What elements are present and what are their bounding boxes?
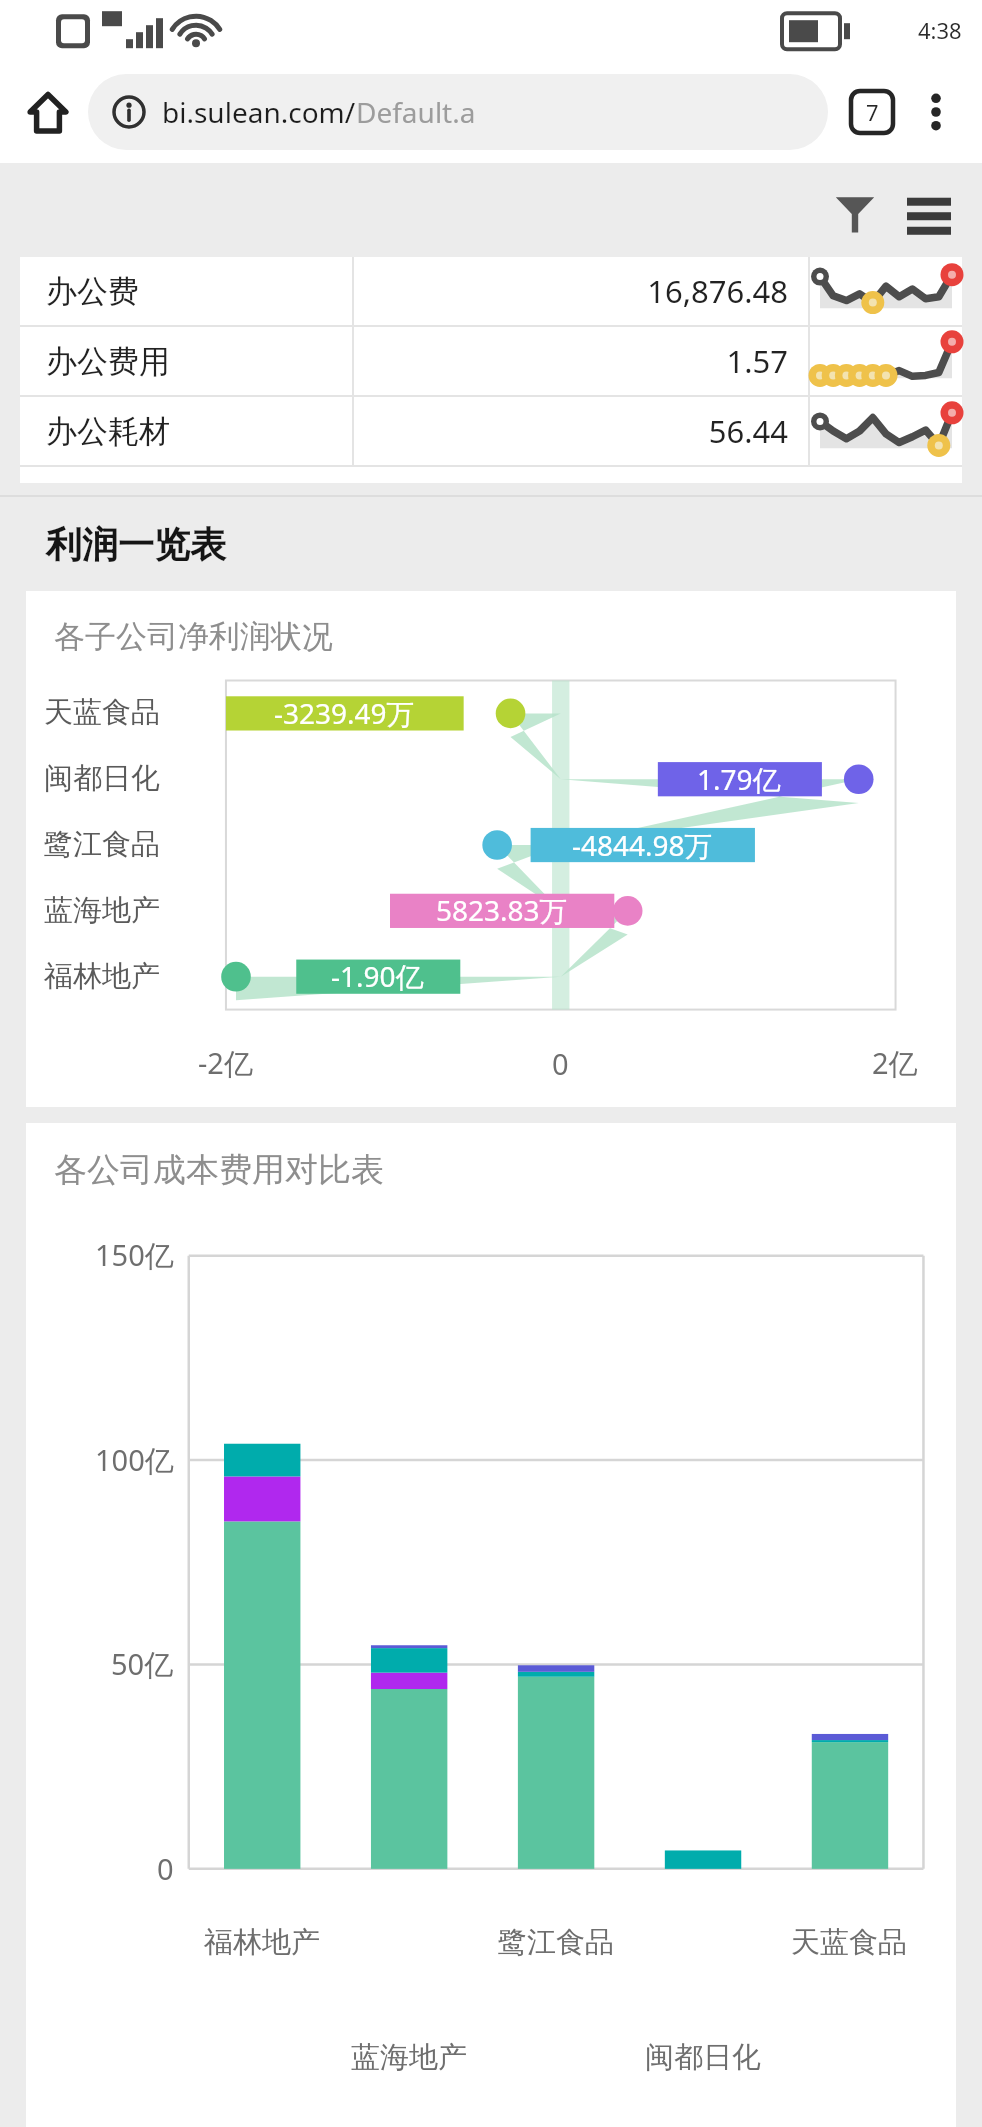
staticText: 2亿	[872, 1043, 918, 1083]
staticText: 50亿	[111, 1644, 174, 1684]
staticText: 鹭江食品	[44, 826, 160, 863]
staticText: 56.44	[354, 410, 788, 452]
button[interactable]: Menu	[900, 185, 958, 243]
staticText: bi.sulean.com/	[162, 93, 356, 131]
staticText: 各公司成本费用对比表	[54, 1149, 384, 1191]
staticText: 福林地产	[44, 958, 160, 995]
button[interactable]: bi.sulean.com/	[88, 74, 828, 150]
staticText: Default.a	[356, 93, 476, 131]
staticText: -1.90亿	[331, 957, 424, 995]
staticText: -4844.98万	[572, 826, 713, 864]
staticText: 闽都日化	[44, 760, 160, 797]
button[interactable]: Filter	[826, 185, 884, 243]
staticText: 100亿	[95, 1440, 174, 1480]
staticText: 天蓝食品	[44, 694, 160, 731]
button[interactable]: 办公耗材	[20, 397, 962, 465]
staticText: 利润一览表	[46, 522, 226, 567]
staticText: 1.57	[354, 340, 788, 382]
staticText: 闽都日化	[645, 2039, 761, 2076]
button[interactable]: More options	[906, 82, 966, 142]
button[interactable]: 办公费	[20, 257, 962, 325]
staticText: 7	[866, 97, 879, 127]
staticText: 办公费用	[46, 342, 352, 381]
staticText: 蓝海地产	[44, 892, 160, 929]
staticText: 蓝海地产	[351, 2039, 467, 2076]
staticText: 4:38	[918, 15, 962, 45]
button[interactable]: 各子公司净利润状况	[26, 591, 956, 1107]
staticText: 1.79亿	[697, 760, 781, 798]
staticText: 16,876.48	[354, 270, 788, 312]
staticText: 天蓝食品	[791, 1924, 907, 1961]
staticText: 0	[157, 1849, 174, 1888]
staticText: -2亿	[198, 1043, 253, 1083]
staticText: 福林地产	[204, 1924, 320, 1961]
staticText: 办公耗材	[46, 412, 352, 451]
staticText: 5823.83万	[436, 891, 568, 929]
staticText: 各子公司净利润状况	[54, 617, 333, 656]
button[interactable]: Home	[16, 80, 80, 144]
staticText: 0	[552, 1044, 569, 1083]
staticText: 办公费	[46, 272, 352, 311]
button[interactable]: Tabs	[842, 82, 902, 142]
staticText: 150亿	[95, 1235, 174, 1275]
staticText: 鹭江食品	[498, 1924, 614, 1961]
button[interactable]: 办公费用	[20, 327, 962, 395]
staticText: -3239.49万	[274, 694, 415, 732]
button[interactable]: 各公司成本费用对比表	[26, 1123, 956, 2127]
